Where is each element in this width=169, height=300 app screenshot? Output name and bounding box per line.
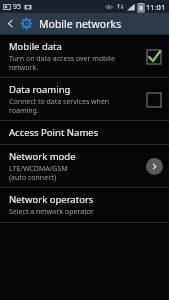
staticText: Network operators <box>9 193 94 206</box>
button[interactable]: Mobile data <box>0 35 169 77</box>
staticText: Data roaming <box>9 83 71 96</box>
button[interactable]: Network mode <box>0 145 169 187</box>
button[interactable]: Unchecked <box>144 90 163 109</box>
button[interactable]: Back <box>0 13 20 34</box>
staticText: 11:01 <box>146 2 166 12</box>
button[interactable]: Checked <box>144 47 163 66</box>
button[interactable]: Network operators <box>0 188 169 222</box>
button[interactable]: Access Point Names <box>0 121 169 144</box>
staticText: Mobile data <box>9 40 62 53</box>
button[interactable]: Open network mode <box>146 158 163 175</box>
staticText: 95 <box>13 2 22 12</box>
staticText: LTE/WCDMA/GSM (auto connect) <box>9 164 68 182</box>
button[interactable]: Data roaming <box>0 78 169 120</box>
staticText: Turn on data access over mobile network. <box>9 54 140 72</box>
staticText: Select a network operator <box>9 207 94 217</box>
staticText: Access Point Names <box>9 126 99 139</box>
staticText: Mobile networks <box>39 17 122 31</box>
staticText: Connect to data services when roaming. <box>9 97 140 115</box>
staticText: Network mode <box>9 150 76 163</box>
